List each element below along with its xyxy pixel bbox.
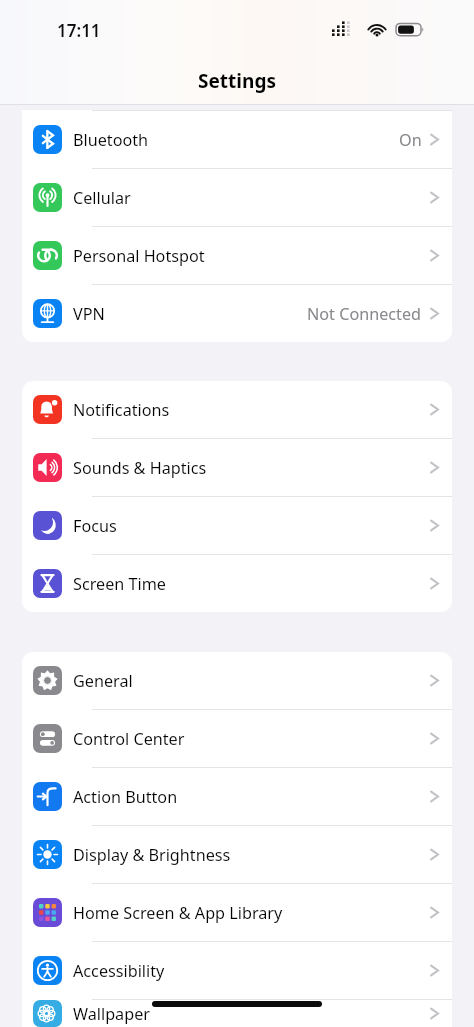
button[interactable]: Wallpaper <box>22 1000 452 1027</box>
button[interactable]: Control Center <box>22 710 452 767</box>
button[interactable]: Focus <box>22 497 452 554</box>
staticText: Display & Brightness <box>73 844 430 866</box>
button[interactable]: VPN <box>22 285 452 342</box>
staticText: Settings <box>0 68 474 94</box>
staticText: On <box>399 129 422 151</box>
button[interactable]: Sounds & Haptics <box>22 439 452 496</box>
staticText: Screen Time <box>73 573 430 595</box>
button[interactable]: Cellular <box>22 169 452 226</box>
staticText: General <box>73 670 430 692</box>
button[interactable]: Action Button <box>22 768 452 825</box>
staticText: 17:11 <box>57 19 101 42</box>
staticText: Wallpaper <box>73 1003 430 1025</box>
staticText: Not Connected <box>307 303 422 325</box>
staticText: Bluetooth <box>73 129 399 151</box>
staticText: Control Center <box>73 728 430 750</box>
staticText: Notifications <box>73 399 430 421</box>
staticText: Accessibility <box>73 960 430 982</box>
staticText: Action Button <box>73 786 430 808</box>
button[interactable]: Display & Brightness <box>22 826 452 883</box>
staticText: VPN <box>73 303 307 325</box>
staticText: Home Screen & App Library <box>73 902 430 924</box>
button[interactable]: Screen Time <box>22 555 452 612</box>
button[interactable]: Bluetooth <box>22 111 452 168</box>
button[interactable]: Home Screen & App Library <box>22 884 452 941</box>
staticText: Personal Hotspot <box>73 245 430 267</box>
staticText: Focus <box>73 515 430 537</box>
button[interactable]: Accessibility <box>22 942 452 999</box>
button[interactable]: Notifications <box>22 381 452 438</box>
staticText: Cellular <box>73 187 430 209</box>
button[interactable]: General <box>22 652 452 709</box>
staticText: Sounds & Haptics <box>73 457 430 479</box>
button[interactable]: Personal Hotspot <box>22 227 452 284</box>
